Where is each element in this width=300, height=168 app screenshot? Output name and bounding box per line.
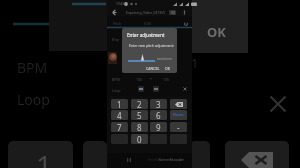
staticText: OK xyxy=(207,23,226,41)
staticText: 2 xyxy=(137,99,142,109)
staticText: Done xyxy=(173,112,184,118)
staticText: 135 xyxy=(163,77,170,82)
staticText: ScreenRecorder xyxy=(159,158,184,162)
staticText: 1 xyxy=(117,99,122,109)
staticText: 4 xyxy=(117,110,122,120)
staticText: 10:42 xyxy=(116,2,125,6)
button[interactable]: 0:00 xyxy=(144,21,152,26)
staticText: Loop xyxy=(17,90,50,109)
staticText: BPM xyxy=(17,58,48,77)
staticText: Exporting_Video_041955 xyxy=(126,10,166,15)
staticText: Key xyxy=(112,37,119,42)
button[interactable]: Loop start xyxy=(138,86,144,92)
staticText: 9 xyxy=(156,122,161,132)
button[interactable]: CANCEL xyxy=(146,66,160,71)
button[interactable]: 4 xyxy=(111,110,128,120)
staticText: HQ xyxy=(171,11,175,15)
button[interactable]: OK xyxy=(165,66,170,71)
staticText: semitones xyxy=(157,57,173,61)
staticText: → xyxy=(149,77,153,81)
button[interactable]: Pitch xyxy=(113,21,122,26)
staticText: Enter new pitch adjustment: xyxy=(129,43,174,48)
staticText: Loop xyxy=(112,88,121,93)
button[interactable]: Back xyxy=(111,9,118,16)
button[interactable]: Loop end xyxy=(153,86,159,92)
staticText: - xyxy=(177,122,180,132)
button[interactable]: 3 xyxy=(150,99,167,109)
staticText: 1 xyxy=(36,146,53,168)
staticText: 3 xyxy=(156,99,161,109)
button[interactable]: 6 xyxy=(150,110,167,120)
button[interactable]: 7 xyxy=(111,122,128,132)
staticText: 8 xyxy=(137,122,142,132)
staticText: 7 xyxy=(117,122,122,132)
other: Backspace xyxy=(175,102,183,107)
staticText: 1 xyxy=(191,54,199,72)
button[interactable]: 9 xyxy=(150,122,167,132)
button[interactable]: More options xyxy=(181,9,188,16)
staticText: BPM xyxy=(112,77,120,82)
button[interactable]: 1 xyxy=(111,99,128,109)
staticText: ● xyxy=(178,158,181,161)
button[interactable]: Reset xyxy=(183,21,189,27)
staticText: 5 xyxy=(137,110,142,120)
button[interactable]: Quality xyxy=(169,10,176,15)
staticText: 6 xyxy=(156,110,161,120)
button[interactable]: 0 xyxy=(131,134,148,144)
staticText: 0 xyxy=(137,134,142,144)
button[interactable]: - xyxy=(170,122,187,132)
button[interactable]: 2 xyxy=(131,99,148,109)
staticText: Recorded by xyxy=(148,158,164,162)
button[interactable]: 5 xyxy=(131,110,148,120)
staticText: Enter adjustment xyxy=(127,32,165,38)
button[interactable]: Close xyxy=(182,86,188,92)
button[interactable]: 8 xyxy=(131,122,148,132)
button[interactable]: Backspace xyxy=(170,99,187,109)
staticText: 135 xyxy=(136,77,143,82)
button[interactable]: Done xyxy=(170,110,187,120)
